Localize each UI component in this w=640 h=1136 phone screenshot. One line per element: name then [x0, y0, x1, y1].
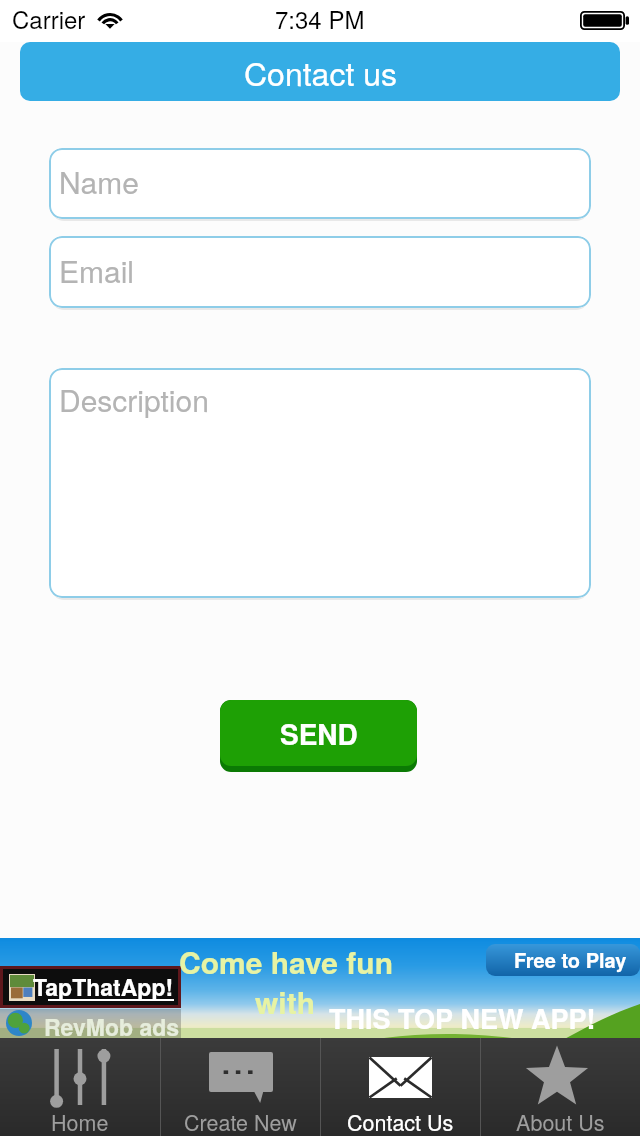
staticText: Name — [59, 160, 139, 203]
staticText: Carrier — [12, 1, 86, 35]
button[interactable]: SEND — [220, 700, 417, 772]
button[interactable]: Contact us — [20, 42, 620, 101]
button[interactable]: About Us — [481, 1038, 640, 1136]
staticText: Email — [59, 249, 134, 292]
staticText: Free to Play — [514, 945, 627, 974]
staticText: Contact Us — [347, 1106, 454, 1136]
button[interactable]: Advertisement — [0, 938, 640, 1038]
staticText: Description — [59, 378, 209, 421]
staticText: TapThatApp! — [33, 970, 174, 1003]
button[interactable]: Contact Us — [321, 1038, 480, 1136]
staticText: with — [255, 980, 315, 1023]
staticText: Come have fun — [179, 940, 393, 983]
staticText: Home — [51, 1106, 109, 1136]
staticText: THIS TOP NEW APP! — [329, 999, 596, 1038]
staticText: SEND — [280, 713, 358, 753]
button[interactable]: Create New — [161, 1038, 320, 1136]
button[interactable]: Name — [49, 148, 591, 219]
button[interactable]: Description — [49, 368, 591, 598]
staticText: 7:34 PM — [275, 1, 365, 35]
staticText: Contact us — [244, 49, 397, 95]
button[interactable]: Email — [49, 236, 591, 308]
staticText: About Us — [516, 1106, 605, 1136]
button[interactable]: Home — [0, 1038, 160, 1136]
staticText: Create New — [184, 1106, 297, 1136]
staticText: RevMob ads — [44, 1010, 180, 1043]
